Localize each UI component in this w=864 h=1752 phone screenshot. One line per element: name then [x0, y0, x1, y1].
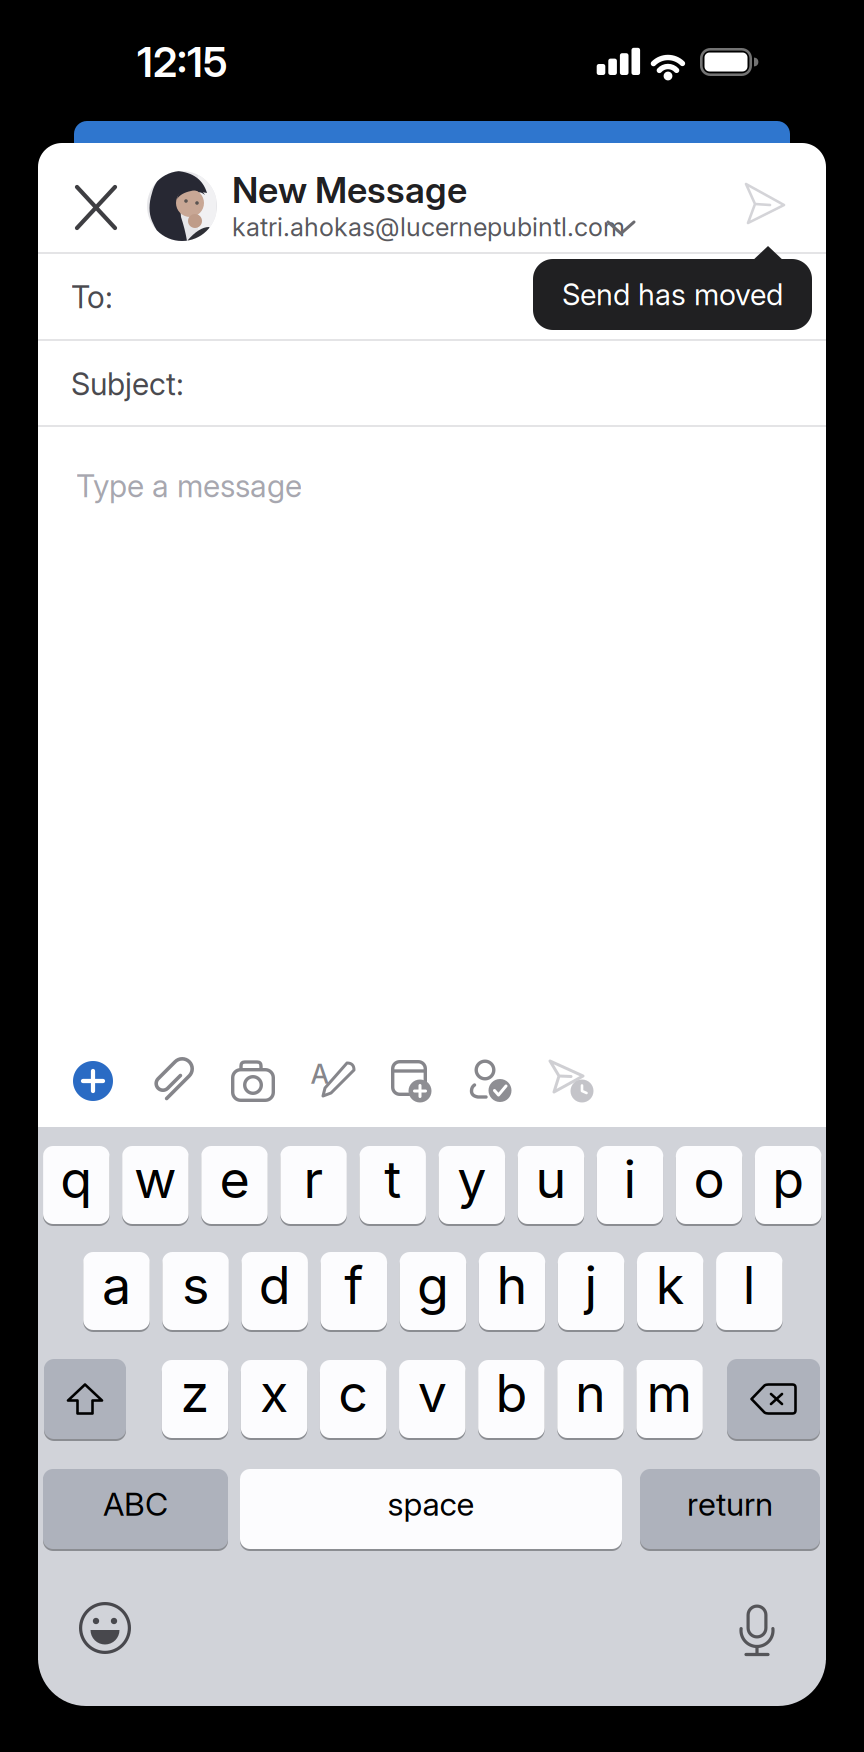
staticText: e	[219, 1148, 249, 1210]
staticText: m	[647, 1362, 693, 1424]
staticText: j	[585, 1254, 598, 1316]
button[interactable]: a	[83, 1251, 150, 1331]
button[interactable]: return	[640, 1468, 820, 1550]
staticText: u	[535, 1148, 566, 1210]
button[interactable]: v	[399, 1359, 465, 1439]
staticText: Subject:	[71, 366, 184, 402]
button[interactable]: w	[122, 1145, 189, 1225]
button[interactable]: n	[557, 1359, 624, 1439]
staticText: w	[134, 1148, 177, 1210]
button[interactable]: o	[676, 1145, 742, 1225]
button[interactable]	[79, 1602, 131, 1654]
button[interactable]: Type a message	[38, 441, 826, 531]
button[interactable]	[391, 1060, 437, 1102]
button[interactable]: k	[637, 1251, 703, 1331]
button[interactable]: j	[558, 1251, 624, 1331]
button[interactable]	[77, 187, 115, 228]
button[interactable]	[742, 183, 788, 225]
button[interactable]	[149, 1056, 197, 1102]
button[interactable]	[727, 1358, 820, 1440]
button[interactable]: t	[359, 1145, 426, 1225]
staticText: return	[687, 1485, 773, 1523]
button[interactable]: h	[479, 1251, 545, 1331]
staticText: t	[384, 1148, 401, 1210]
button[interactable]	[548, 1058, 594, 1104]
staticText: New Message	[232, 169, 467, 211]
button[interactable]: x	[241, 1359, 307, 1439]
button[interactable]: ABC	[43, 1468, 228, 1550]
button[interactable]: y	[439, 1145, 505, 1225]
button[interactable]	[44, 1358, 126, 1440]
button[interactable]: c	[320, 1359, 386, 1439]
button[interactable]	[230, 1060, 276, 1102]
staticText: A	[310, 1058, 329, 1090]
staticText: a	[102, 1254, 131, 1316]
staticText: z	[180, 1362, 209, 1424]
staticText: l	[743, 1254, 756, 1316]
staticText: Send has moved	[562, 277, 783, 312]
button[interactable]: q	[43, 1145, 109, 1225]
staticText: r	[304, 1148, 324, 1210]
button[interactable]: To:	[38, 254, 826, 339]
button[interactable]: u	[518, 1145, 584, 1225]
button[interactable]	[147, 171, 217, 241]
staticText: katri.ahokas@lucernepubintl.com	[232, 212, 625, 242]
staticText: o	[694, 1148, 725, 1210]
button[interactable]	[469, 1059, 515, 1103]
button[interactable]: Subject:	[38, 342, 826, 426]
button[interactable]: f	[320, 1251, 387, 1331]
staticText: p	[772, 1148, 804, 1210]
button[interactable]: i	[597, 1145, 663, 1225]
staticText: y	[457, 1148, 486, 1210]
staticText: g	[417, 1254, 449, 1316]
staticText: d	[259, 1254, 291, 1316]
button[interactable]: l	[716, 1251, 782, 1331]
staticText: 12:15	[137, 38, 228, 86]
button[interactable]: g	[400, 1251, 466, 1331]
staticText: Type a message	[76, 468, 302, 504]
button[interactable]: z	[162, 1359, 228, 1439]
button[interactable]: r	[280, 1145, 347, 1225]
staticText: i	[623, 1148, 636, 1210]
staticText: b	[495, 1362, 527, 1424]
staticText: v	[418, 1362, 447, 1424]
staticText: To:	[71, 279, 113, 315]
staticText: space	[387, 1485, 474, 1523]
button[interactable]: A	[310, 1061, 356, 1101]
button[interactable]: e	[201, 1145, 268, 1225]
button[interactable]: b	[478, 1359, 545, 1439]
button[interactable]	[73, 1061, 113, 1101]
staticText: h	[496, 1254, 527, 1316]
button[interactable]: space	[240, 1468, 622, 1550]
staticText: ABC	[103, 1485, 168, 1523]
staticText: k	[656, 1254, 685, 1316]
staticText: q	[60, 1148, 92, 1210]
button[interactable]	[737, 1603, 777, 1656]
button[interactable]: s	[162, 1251, 229, 1331]
button[interactable]: m	[636, 1359, 703, 1439]
staticText: s	[182, 1254, 209, 1316]
button[interactable]: d	[241, 1251, 308, 1331]
staticText: x	[260, 1362, 288, 1424]
staticText: f	[344, 1254, 363, 1316]
staticText: n	[575, 1362, 606, 1424]
button[interactable]: p	[755, 1145, 821, 1225]
staticText: c	[338, 1362, 368, 1424]
